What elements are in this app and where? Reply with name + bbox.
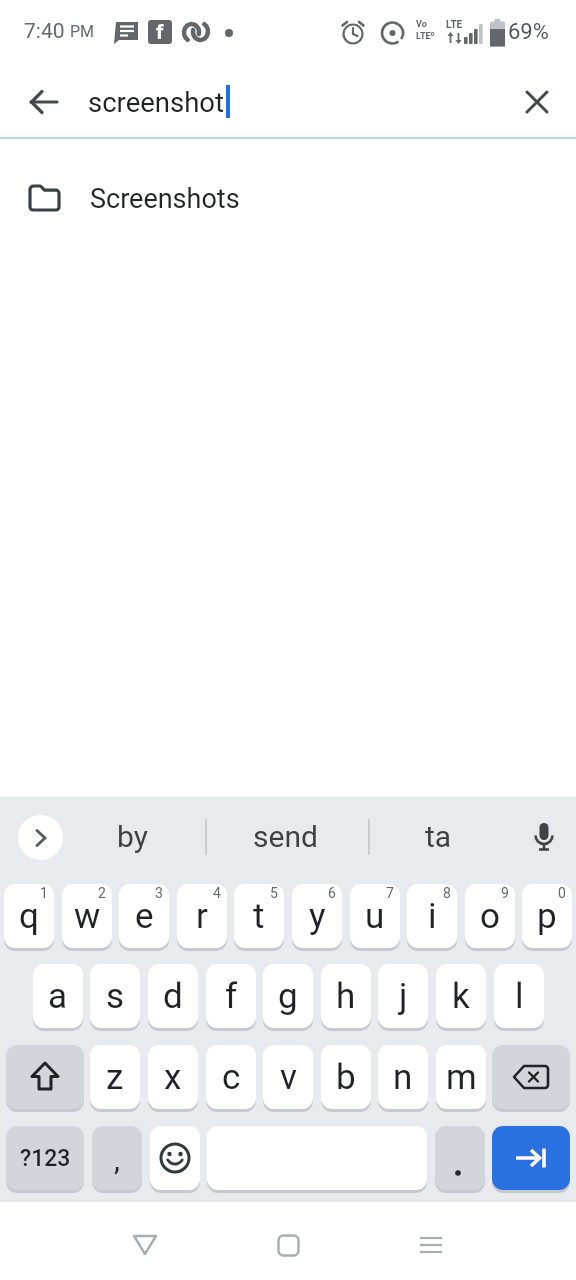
staticText: v xyxy=(280,1057,297,1098)
button[interactable] xyxy=(524,818,564,858)
button[interactable]: u xyxy=(350,884,400,948)
button[interactable] xyxy=(492,1126,570,1190)
button[interactable]: ?123 xyxy=(6,1126,84,1190)
staticText: , xyxy=(114,1142,120,1177)
button[interactable]: r xyxy=(177,884,227,948)
staticText: h xyxy=(336,976,356,1017)
button[interactable]: send xyxy=(207,797,363,876)
staticText: 0 xyxy=(558,885,566,901)
staticText: 7 xyxy=(386,885,394,901)
staticText: screenshot xyxy=(88,86,225,118)
staticText: 2 xyxy=(98,885,106,901)
staticText: PM xyxy=(70,22,95,41)
staticText: 5 xyxy=(270,885,278,901)
staticText: q xyxy=(19,896,39,937)
staticText: j xyxy=(399,976,408,1017)
button[interactable] xyxy=(262,1219,314,1271)
staticText: n xyxy=(393,1057,413,1098)
staticText: Vo xyxy=(416,19,427,30)
button[interactable]: l xyxy=(494,964,544,1028)
button[interactable] xyxy=(18,76,70,128)
staticText: p xyxy=(537,896,557,937)
button[interactable]: o xyxy=(465,884,515,948)
staticText: y xyxy=(309,896,326,937)
staticText: e xyxy=(135,896,154,937)
button[interactable] xyxy=(119,1219,171,1271)
staticText: LTE xyxy=(446,19,463,31)
button[interactable]: f xyxy=(206,964,256,1028)
button[interactable]: x xyxy=(148,1045,198,1109)
button[interactable]: y xyxy=(292,884,342,948)
staticText: ta xyxy=(425,819,452,854)
staticText: w xyxy=(74,896,101,937)
staticText: b xyxy=(336,1057,356,1098)
staticText: x xyxy=(164,1057,182,1098)
staticText: d xyxy=(163,976,183,1017)
button[interactable] xyxy=(511,76,563,128)
staticText: f xyxy=(225,976,238,1017)
staticText: ?123 xyxy=(20,1145,71,1172)
staticText: 7:40 xyxy=(24,19,65,44)
button[interactable]: j xyxy=(378,964,428,1028)
button[interactable]: a xyxy=(33,964,83,1028)
button[interactable] xyxy=(6,1045,84,1109)
button[interactable]: ta xyxy=(373,797,503,876)
staticText: 1 xyxy=(40,885,48,901)
button[interactable] xyxy=(492,1045,570,1109)
staticText: 6 xyxy=(328,885,336,901)
button[interactable]: Screenshots xyxy=(0,151,576,247)
staticText: m xyxy=(446,1057,477,1098)
button[interactable] xyxy=(435,1126,485,1190)
staticText: Screenshots xyxy=(90,183,240,215)
button[interactable]: w xyxy=(62,884,112,948)
button[interactable] xyxy=(18,815,63,860)
button[interactable]: b xyxy=(321,1045,371,1109)
button[interactable]: i xyxy=(407,884,457,948)
staticText: t xyxy=(253,896,265,937)
button[interactable] xyxy=(150,1126,200,1190)
button[interactable]: q xyxy=(4,884,54,948)
staticText: 4 xyxy=(213,885,221,901)
button[interactable]: k xyxy=(436,964,486,1028)
button[interactable]: h xyxy=(321,964,371,1028)
staticText: LTEᵒ xyxy=(416,31,435,42)
staticText: 69% xyxy=(508,19,549,45)
staticText: u xyxy=(365,896,385,937)
button[interactable]: s xyxy=(90,964,140,1028)
staticText: c xyxy=(222,1057,241,1098)
staticText: k xyxy=(452,976,470,1017)
staticText: z xyxy=(106,1057,124,1098)
staticText: s xyxy=(106,976,125,1017)
staticText: f xyxy=(156,20,164,44)
button[interactable]: n xyxy=(378,1045,428,1109)
button[interactable]: d xyxy=(148,964,198,1028)
button[interactable]: z xyxy=(90,1045,140,1109)
staticText: send xyxy=(253,819,318,854)
staticText: i xyxy=(428,896,437,937)
staticText: a xyxy=(48,976,68,1017)
button[interactable]: v xyxy=(263,1045,313,1109)
staticText: l xyxy=(515,976,524,1017)
button[interactable]: c xyxy=(206,1045,256,1109)
button[interactable]: p xyxy=(522,884,572,948)
button[interactable]: e xyxy=(119,884,169,948)
button[interactable] xyxy=(405,1219,457,1271)
staticText: 9 xyxy=(501,885,509,901)
staticText: by xyxy=(117,819,148,854)
button[interactable]: t xyxy=(234,884,284,948)
staticText: o xyxy=(480,896,500,937)
staticText: 3 xyxy=(155,885,163,901)
staticText: 8 xyxy=(443,885,451,901)
staticText: r xyxy=(196,896,208,937)
button[interactable]: by xyxy=(64,797,200,876)
button[interactable]: m xyxy=(436,1045,486,1109)
button[interactable]: , xyxy=(92,1126,142,1190)
button[interactable]: g xyxy=(263,964,313,1028)
staticText: g xyxy=(278,976,298,1017)
